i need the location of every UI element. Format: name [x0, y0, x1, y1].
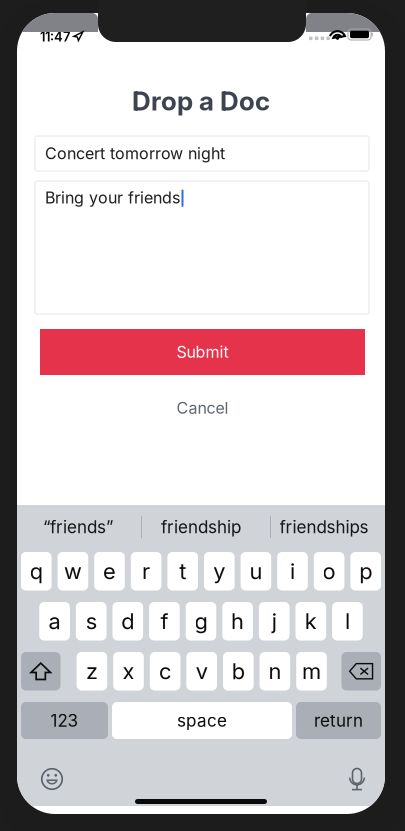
button[interactable]: t — [167, 552, 198, 590]
staticText: 11:47 — [40, 29, 70, 45]
staticText: Drop a Doc — [132, 85, 270, 117]
button[interactable]: space — [112, 702, 292, 739]
staticText: f — [160, 608, 168, 634]
staticText: l — [345, 608, 350, 634]
button[interactable]: c — [150, 652, 180, 690]
button[interactable]: 123 — [21, 702, 108, 739]
staticText: friendship — [161, 517, 241, 537]
staticText: v — [196, 658, 208, 684]
button[interactable]: u — [241, 552, 271, 590]
button[interactable]: return — [296, 702, 381, 739]
button[interactable]: h — [222, 602, 253, 640]
button[interactable]: b — [223, 652, 254, 690]
button[interactable]: p — [350, 552, 381, 590]
button[interactable]: v — [186, 652, 217, 690]
staticText: Bring your friends — [45, 188, 180, 207]
staticText: g — [194, 608, 207, 634]
button[interactable]: f — [149, 602, 180, 640]
staticText: x — [122, 658, 134, 684]
button[interactable]: i — [277, 552, 308, 590]
staticText: a — [49, 608, 61, 634]
button[interactable]: Emoji keyboard — [40, 767, 64, 791]
button[interactable]: g — [186, 602, 216, 640]
staticText: w — [64, 558, 82, 584]
button[interactable]: o — [314, 552, 344, 590]
button[interactable]: s — [76, 602, 106, 640]
button[interactable]: Cancel — [40, 391, 365, 425]
staticText: u — [249, 558, 262, 584]
staticText: friendships — [279, 517, 368, 537]
staticText: r — [142, 558, 150, 584]
staticText: Concert tomorrow night — [45, 144, 225, 163]
button[interactable]: a — [39, 602, 70, 640]
staticText: q — [30, 558, 43, 584]
button[interactable]: q — [21, 552, 52, 590]
staticText: i — [290, 558, 295, 584]
staticText: j — [272, 608, 277, 634]
staticText: m — [302, 658, 321, 684]
button[interactable]: j — [259, 602, 289, 640]
staticText: n — [268, 658, 281, 684]
staticText: e — [103, 558, 116, 584]
staticText: 123 — [50, 710, 78, 731]
button[interactable]: e — [94, 552, 125, 590]
staticText: “friends” — [43, 517, 113, 537]
button[interactable]: friendships — [263, 505, 385, 549]
button[interactable]: l — [332, 602, 363, 640]
button[interactable]: Delete — [341, 652, 381, 690]
button[interactable]: k — [295, 602, 326, 640]
staticText: h — [231, 608, 244, 634]
button[interactable]: z — [77, 652, 107, 690]
staticText: s — [86, 608, 97, 634]
button[interactable]: m — [296, 652, 327, 690]
button[interactable]: w — [58, 552, 88, 590]
staticText: o — [323, 558, 336, 584]
button[interactable]: Shift — [21, 652, 60, 690]
staticText: c — [159, 658, 171, 684]
button[interactable]: r — [131, 552, 161, 590]
staticText: Submit — [176, 342, 228, 362]
staticText: Cancel — [176, 398, 228, 418]
button[interactable]: “friends” — [17, 505, 139, 549]
staticText: p — [359, 558, 372, 584]
button[interactable]: x — [113, 652, 144, 690]
staticText: return — [314, 710, 363, 731]
staticText: t — [179, 558, 186, 584]
staticText: space — [177, 710, 227, 731]
button[interactable]: n — [260, 652, 290, 690]
button[interactable]: friendship — [139, 505, 263, 549]
staticText: z — [86, 658, 98, 684]
staticText: k — [305, 608, 317, 634]
button[interactable]: Dictation — [347, 768, 367, 791]
button[interactable]: y — [204, 552, 235, 590]
staticText: d — [121, 608, 134, 634]
button[interactable]: Submit — [40, 329, 365, 375]
button[interactable]: d — [112, 602, 143, 640]
staticText: b — [232, 658, 245, 684]
staticText: y — [213, 558, 225, 584]
